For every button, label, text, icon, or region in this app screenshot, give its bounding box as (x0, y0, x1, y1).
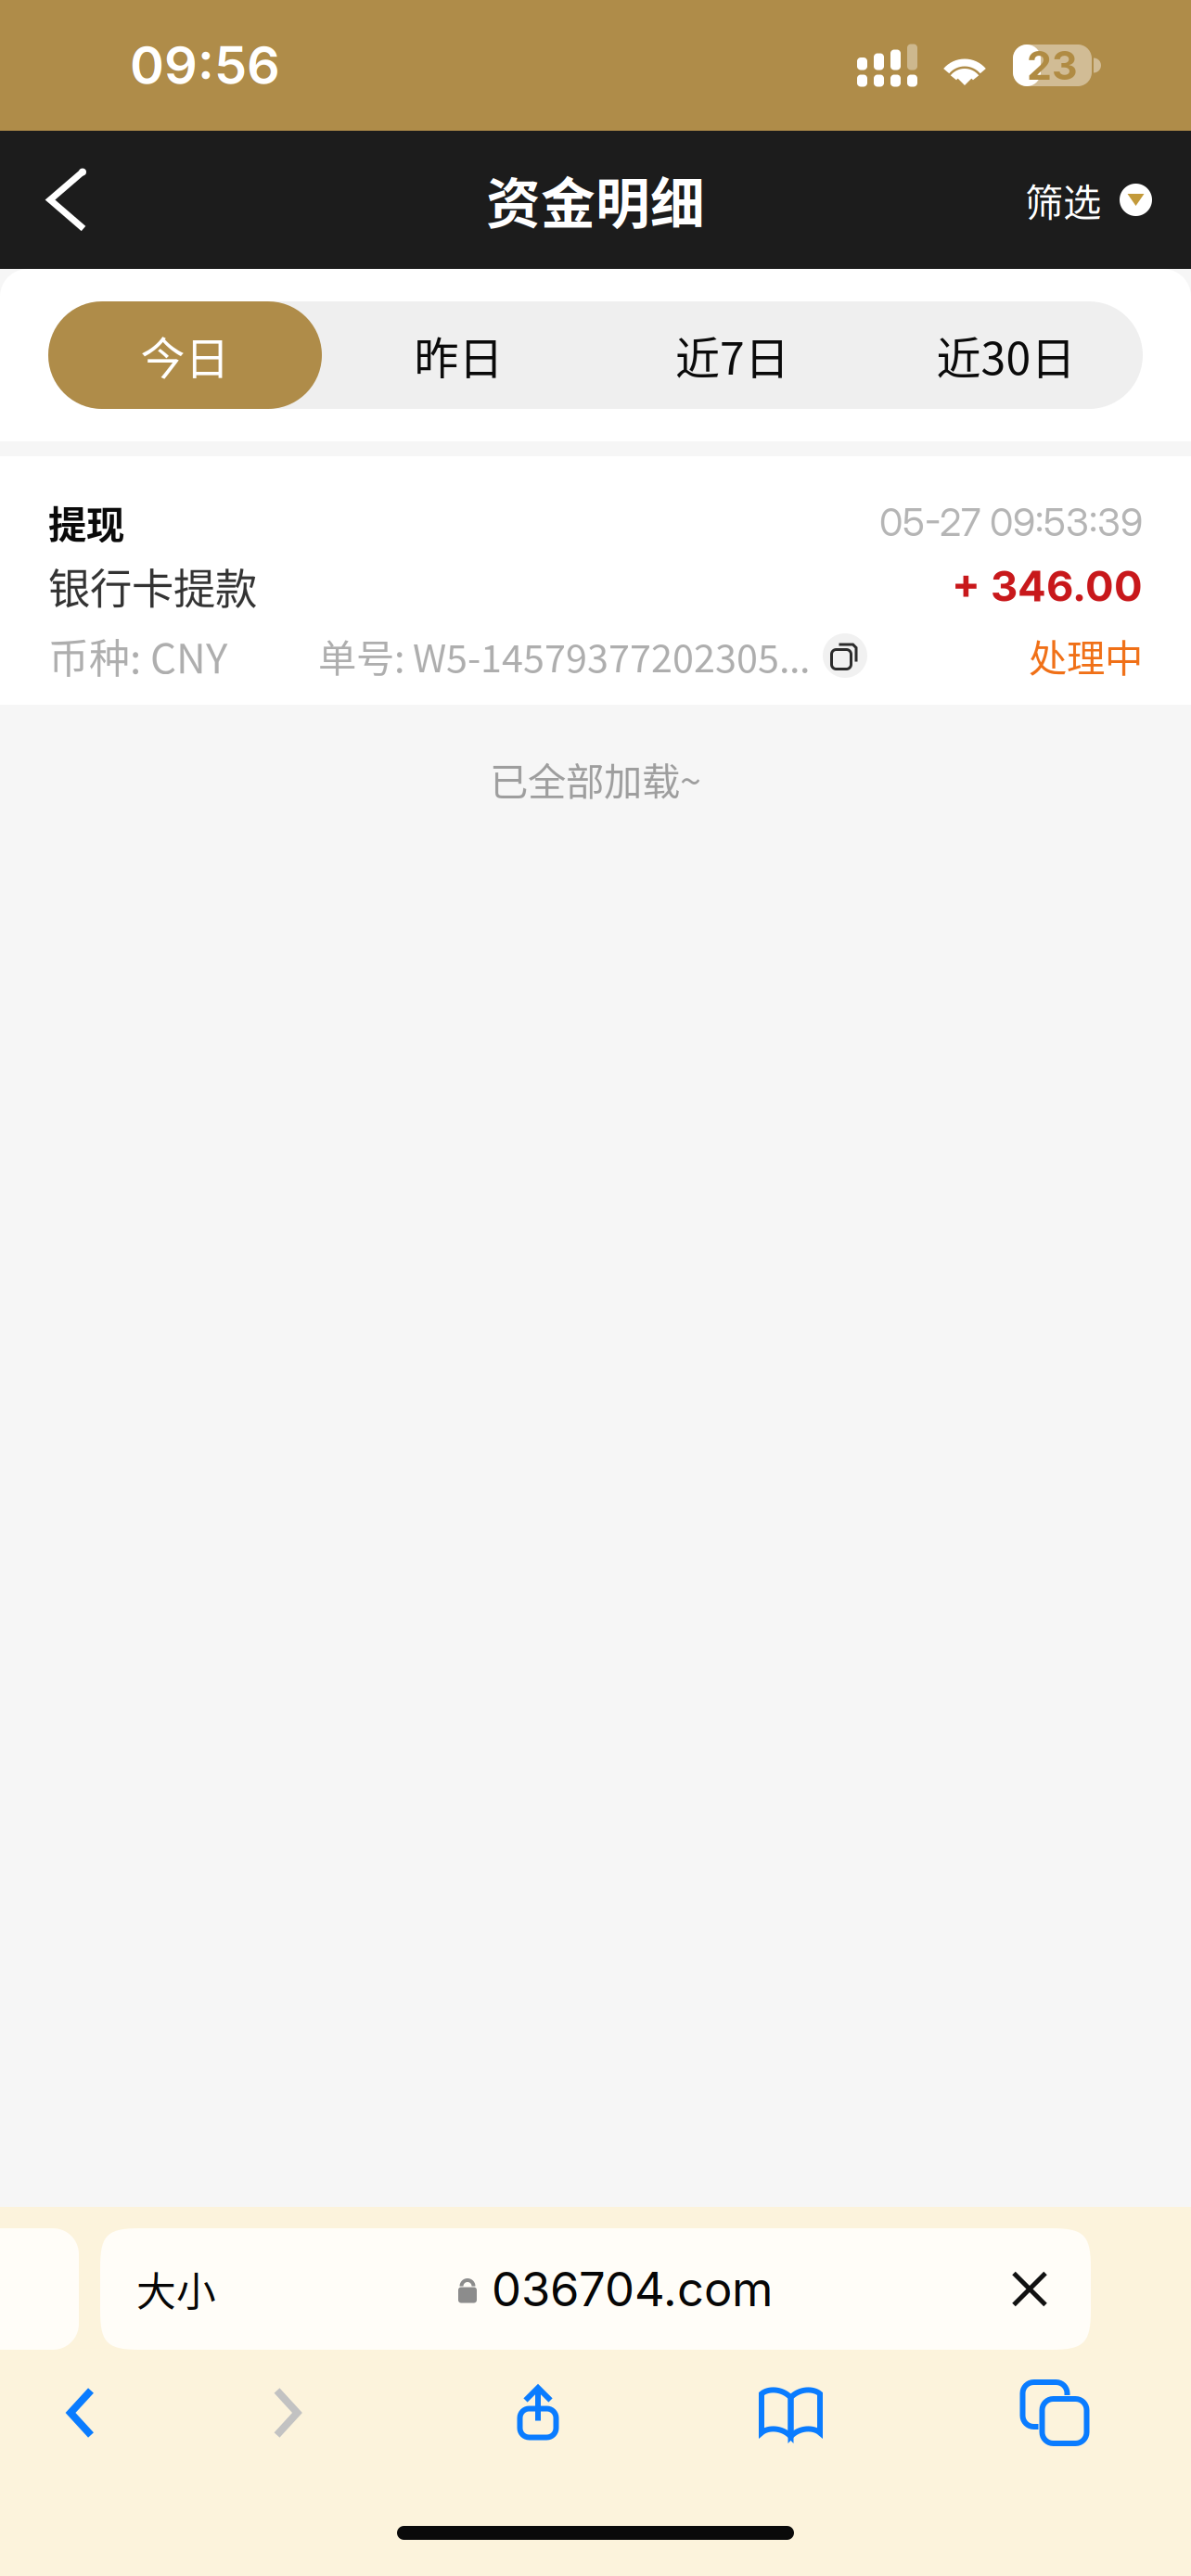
staticText: 09:56 (130, 34, 280, 97)
button[interactable]: 筛选 (1025, 148, 1191, 252)
staticText: 今日 (141, 323, 230, 387)
staticText: 提现 (48, 494, 124, 550)
button[interactable]: Tabs (918, 2371, 1191, 2455)
button[interactable]: 今日 (48, 301, 322, 409)
staticText: 近30日 (936, 323, 1076, 387)
button[interactable]: 大小 (129, 2238, 224, 2340)
button[interactable]: 近7日 (595, 301, 869, 409)
staticText: 大小 (136, 2260, 216, 2318)
staticText: 05-27 09:53:39 (879, 499, 1143, 545)
button[interactable]: Bookmarks (663, 2371, 918, 2455)
staticText: 币种: CNY (48, 626, 227, 685)
button[interactable]: Share (413, 2371, 663, 2455)
button[interactable]: Close (1007, 2250, 1052, 2328)
button[interactable]: 提现 (0, 456, 1191, 705)
staticText: 昨日 (414, 323, 503, 387)
button[interactable]: Back (0, 2371, 161, 2455)
button[interactable]: Forward (161, 2371, 413, 2455)
staticText: 资金明细 (486, 160, 705, 239)
staticText: 036704.com (492, 2261, 773, 2317)
staticText: 近7日 (675, 323, 789, 387)
staticText: 23 (1027, 41, 1078, 89)
button[interactable]: 昨日 (322, 301, 595, 409)
staticText: 处理中 (1029, 628, 1143, 683)
button[interactable]: 近30日 (869, 301, 1143, 409)
staticText: 已全部加载~ (490, 751, 701, 807)
button[interactable]: Back (0, 148, 120, 252)
staticText: 筛选 (1025, 172, 1101, 228)
staticText: 银行卡提款 (48, 556, 257, 616)
staticText: 单号: W5-14579377202305... (318, 628, 810, 683)
staticText: + 346.00 (952, 561, 1143, 612)
